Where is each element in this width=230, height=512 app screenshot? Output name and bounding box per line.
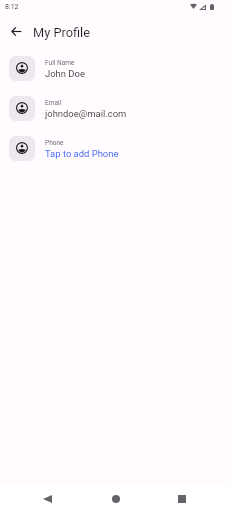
staticText: John Doe: [45, 68, 85, 79]
staticText: Full Name: [45, 59, 75, 67]
staticText: Email: [45, 99, 62, 107]
staticText: Phone: [45, 139, 64, 147]
staticText: johndoe@mail.com: [45, 108, 127, 119]
button[interactable]: Full Name: [0, 48, 230, 88]
button[interactable]: Back: [5, 20, 27, 42]
button[interactable]: Home: [102, 485, 129, 512]
staticText: My Profile: [33, 25, 90, 40]
button[interactable]: Email: [0, 88, 230, 128]
staticText: Tap to add Phone: [45, 148, 119, 159]
staticText: 8:12: [5, 3, 19, 11]
button[interactable]: Phone: [0, 128, 230, 168]
button[interactable]: Back: [34, 485, 61, 512]
button[interactable]: Recents: [168, 485, 195, 512]
